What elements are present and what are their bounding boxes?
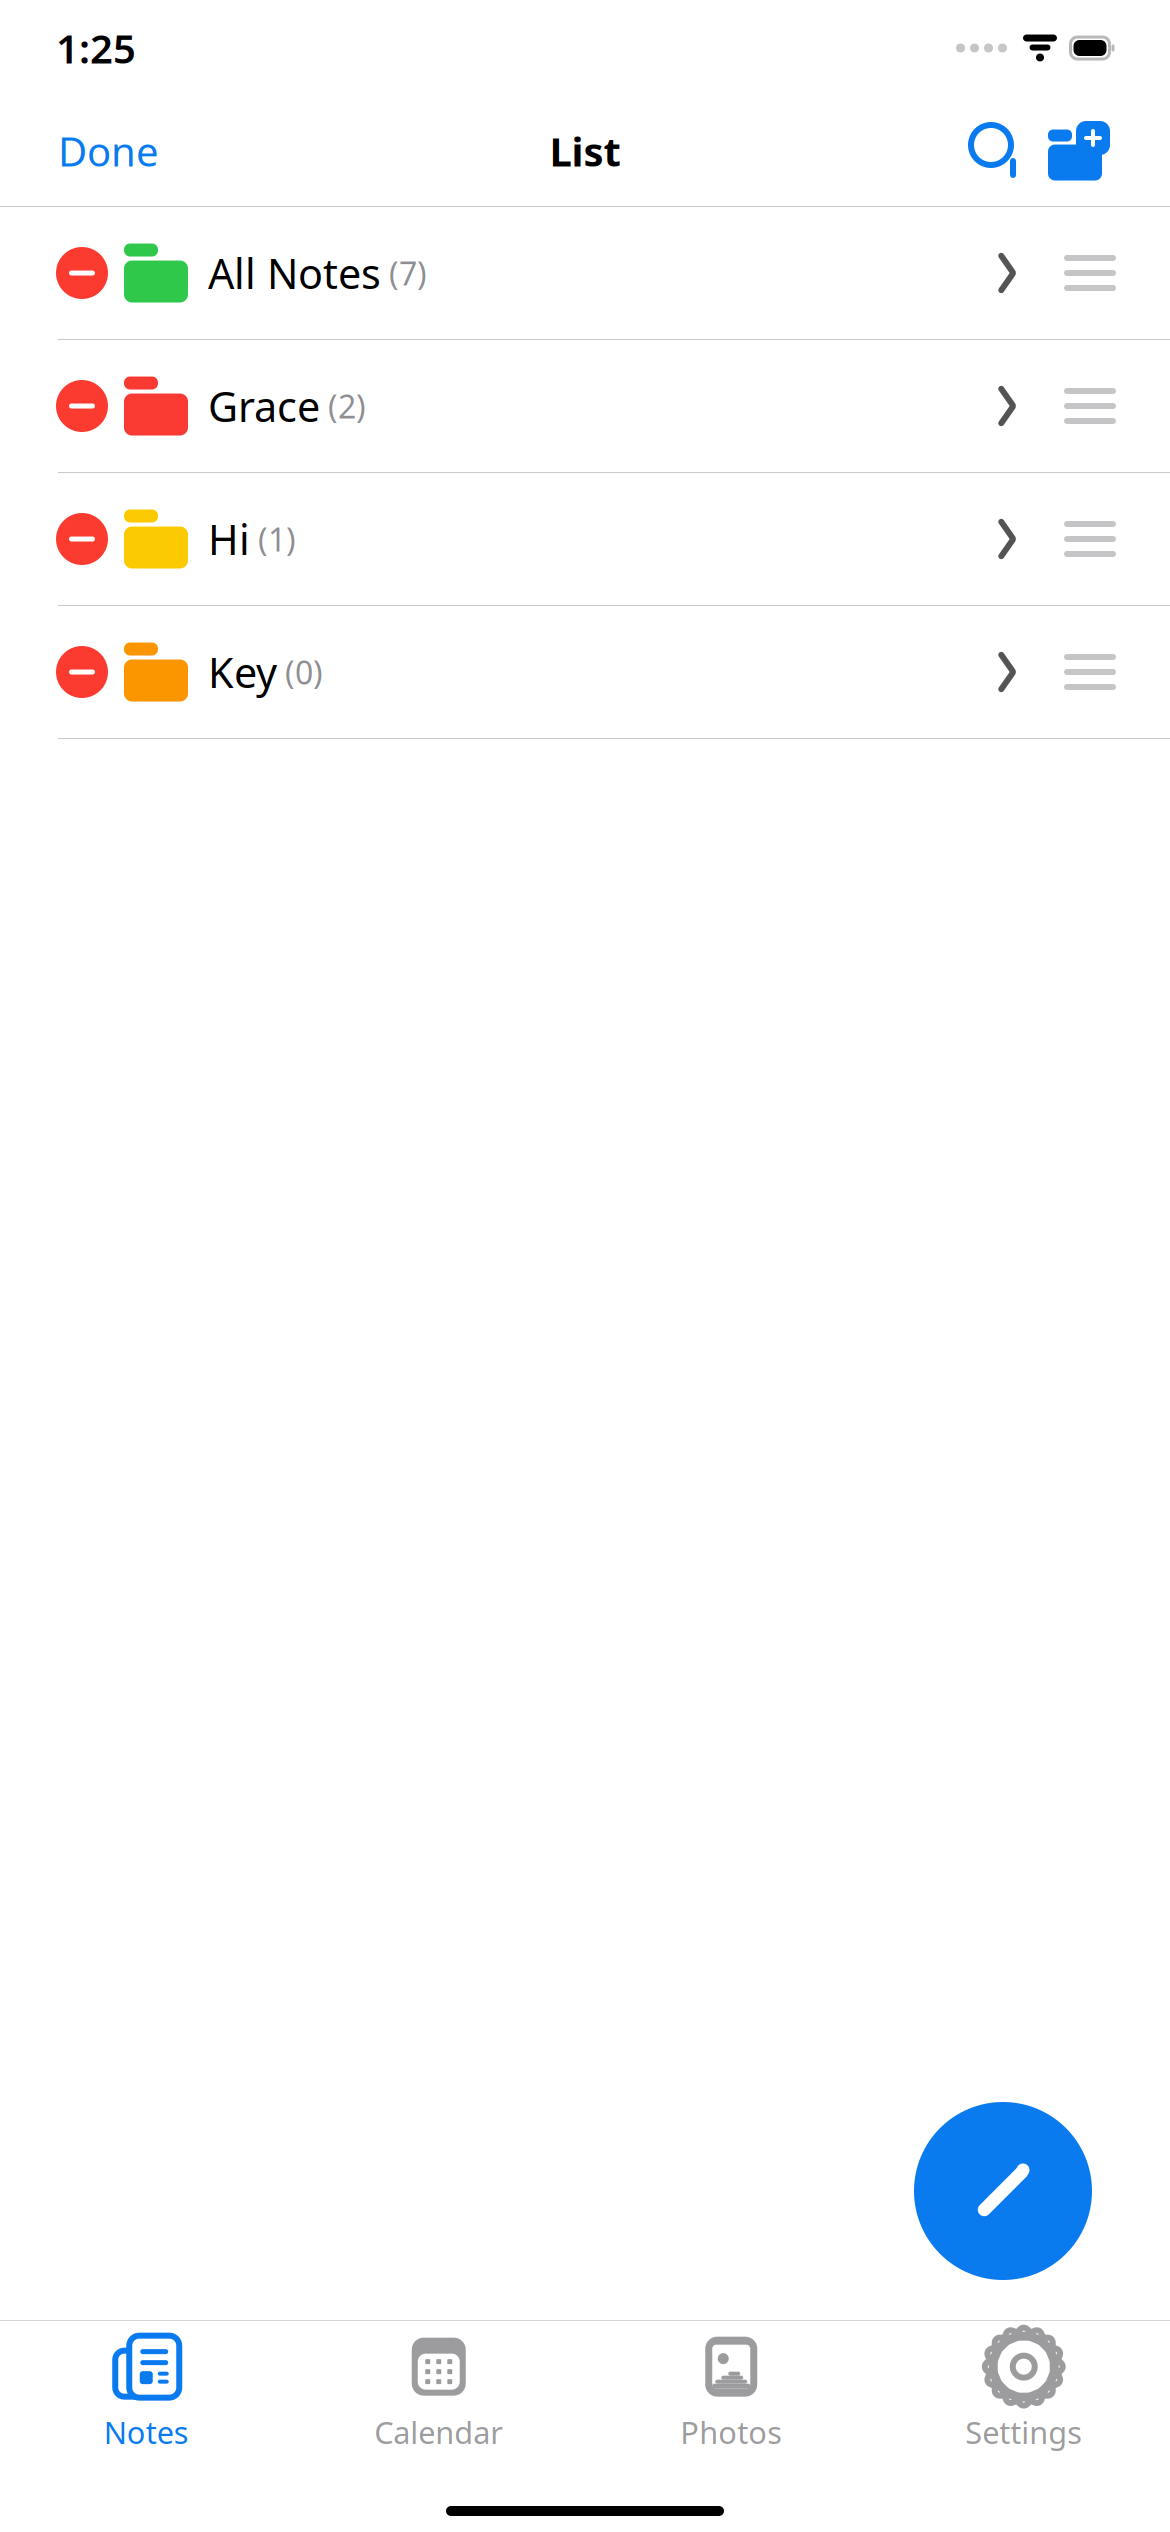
- button[interactable]: Reorder Key: [1056, 631, 1170, 713]
- staticText: Photos: [680, 2412, 782, 2452]
- button[interactable]: Delete All Notes: [0, 227, 124, 319]
- staticText: 1:25: [56, 21, 136, 74]
- button[interactable]: Key: [124, 622, 1056, 721]
- button[interactable]: Grace: [124, 356, 1056, 455]
- staticText: Settings: [965, 2412, 1082, 2452]
- button[interactable]: Delete Hi: [0, 493, 124, 585]
- button[interactable]: All Notes: [124, 223, 1056, 322]
- staticText: Hi: [208, 512, 250, 566]
- staticText: (7): [381, 252, 427, 294]
- staticText: Notes: [104, 2412, 189, 2452]
- staticText: Calendar: [374, 2412, 503, 2452]
- staticText: (1): [250, 518, 296, 560]
- button[interactable]: Reorder All Notes: [1056, 232, 1170, 314]
- staticText: Grace: [208, 379, 320, 433]
- button[interactable]: New Folder: [1036, 120, 1120, 182]
- button[interactable]: Reorder Grace: [1056, 365, 1170, 447]
- staticText: Key: [208, 645, 277, 699]
- staticText: All Notes: [208, 246, 381, 300]
- staticText: (2): [320, 385, 366, 427]
- staticText: (0): [277, 651, 323, 693]
- button[interactable]: New Note: [914, 2102, 1092, 2280]
- button[interactable]: Calendar: [292, 2318, 585, 2462]
- button[interactable]: Done: [50, 114, 167, 187]
- button[interactable]: Notes: [0, 2318, 292, 2462]
- staticText: Done: [58, 124, 159, 177]
- button[interactable]: Settings: [877, 2318, 1170, 2462]
- button[interactable]: Delete Key: [0, 626, 124, 718]
- button[interactable]: Delete Grace: [0, 360, 124, 452]
- staticText: List: [549, 124, 620, 177]
- button[interactable]: Hi: [124, 489, 1056, 588]
- button[interactable]: Reorder Hi: [1056, 498, 1170, 580]
- button[interactable]: Search: [958, 122, 1036, 180]
- button[interactable]: Photos: [585, 2318, 877, 2462]
